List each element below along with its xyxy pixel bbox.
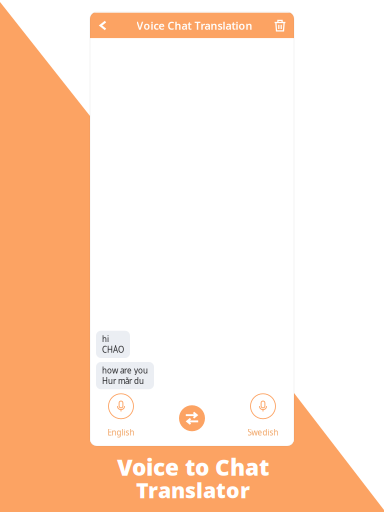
staticText: how are you: [102, 365, 148, 376]
staticText: English: [107, 427, 134, 438]
button[interactable]: English: [92, 394, 150, 439]
staticText: Hur mår du: [102, 376, 144, 386]
staticText: Translator: [136, 476, 250, 504]
button[interactable]: Swedish: [234, 394, 292, 439]
staticText: CHÀO: [102, 344, 124, 355]
staticText: hi: [102, 334, 109, 344]
staticText: Voice to Chat: [117, 452, 269, 482]
staticText: Voice Chat Translation: [136, 18, 252, 33]
staticText: Swedish: [247, 427, 278, 438]
button[interactable]: Swap languages: [179, 405, 205, 431]
button[interactable]: Back: [90, 13, 116, 38]
button[interactable]: Delete conversation: [266, 13, 294, 38]
